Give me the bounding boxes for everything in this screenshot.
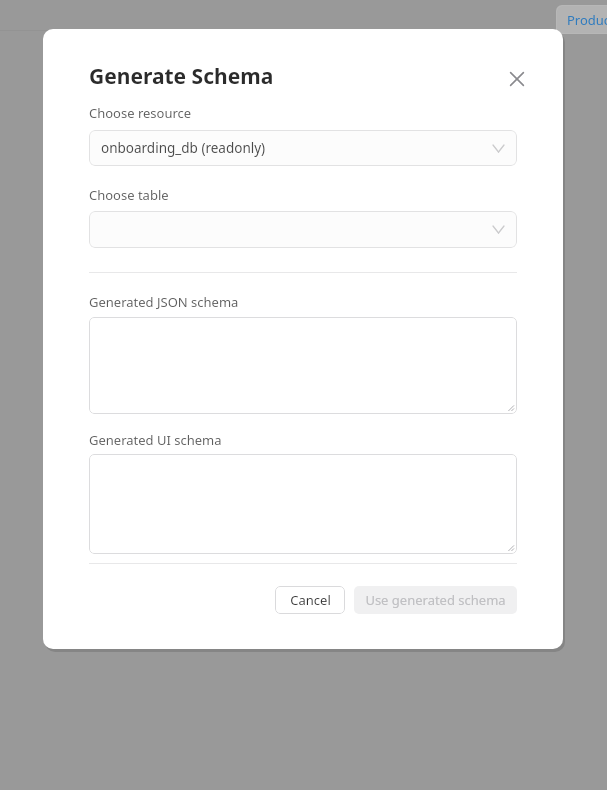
button[interactable]: Select option	[89, 211, 517, 248]
staticText: Generated UI schema	[89, 431, 222, 449]
button[interactable]: Use generated schema	[354, 586, 517, 614]
staticText: onboarding_db (readonly)	[101, 139, 266, 157]
staticText: Choose resource	[89, 104, 192, 122]
staticText: Choose table	[89, 186, 169, 204]
button[interactable]: Cancel	[275, 586, 345, 614]
button[interactable]: Produc	[556, 5, 607, 34]
button[interactable]: Schema text area	[89, 317, 517, 414]
staticText: Use generated schema	[365, 591, 506, 609]
button[interactable]: Schema text area	[89, 454, 517, 554]
button[interactable]: Close	[499, 61, 535, 97]
button[interactable]: Select option	[89, 130, 517, 166]
staticText: Produc	[567, 11, 607, 29]
staticText: Cancel	[290, 591, 331, 609]
staticText: Generated JSON schema	[89, 293, 239, 311]
staticText: Generate Schema	[89, 62, 274, 91]
